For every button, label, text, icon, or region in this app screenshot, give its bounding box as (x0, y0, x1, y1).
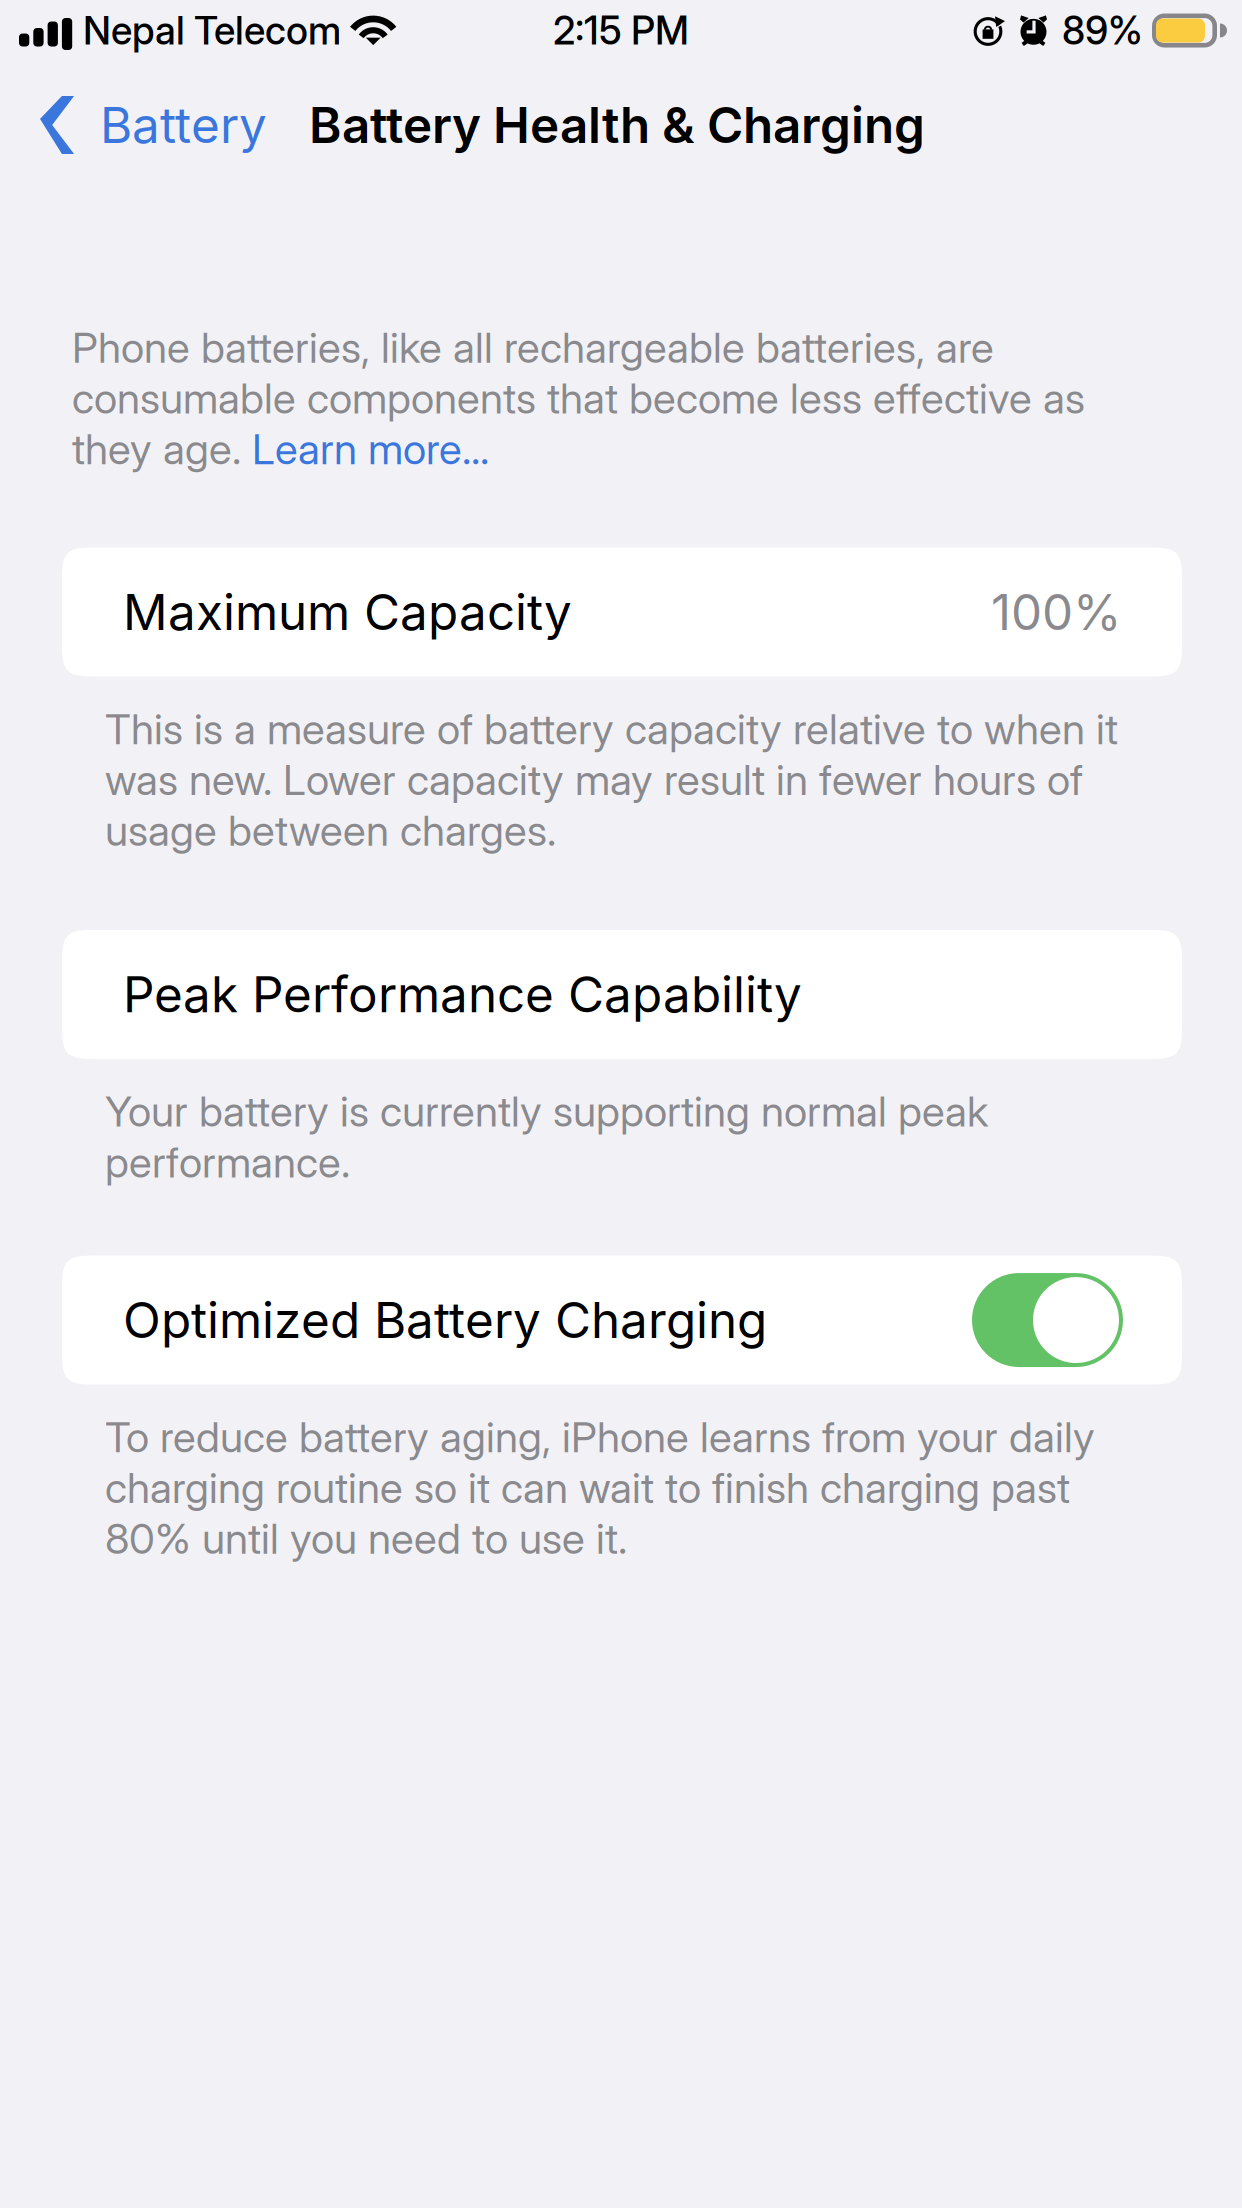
button[interactable]: Battery (0, 81, 277, 169)
staticText: 2:15 PM (553, 7, 689, 54)
staticText: To reduce battery aging, iPhone learns f… (105, 1411, 1095, 1564)
staticText: Battery Health & Charging (309, 95, 925, 155)
button[interactable]: Learn more about battery health (0, 322, 1242, 474)
staticText: Phone batteries, like all rechargeable b… (72, 322, 1085, 474)
staticText: Your battery is currently supporting nor… (105, 1086, 988, 1187)
staticText: Nepal Telecom (83, 7, 341, 54)
staticText: Maximum Capacity (123, 582, 572, 642)
staticText: Optimized Battery Charging (123, 1290, 767, 1350)
staticText: Peak Performance Capability (123, 965, 802, 1024)
button[interactable]: Peak Performance Capability (0, 930, 1242, 1059)
button[interactable]: Optimized Battery Charging (972, 1273, 1123, 1367)
staticText: This is a measure of battery capacity re… (105, 703, 1118, 856)
staticText: 100% (991, 582, 1121, 642)
staticText: 89% (1062, 7, 1143, 54)
staticText: Battery (100, 95, 267, 155)
